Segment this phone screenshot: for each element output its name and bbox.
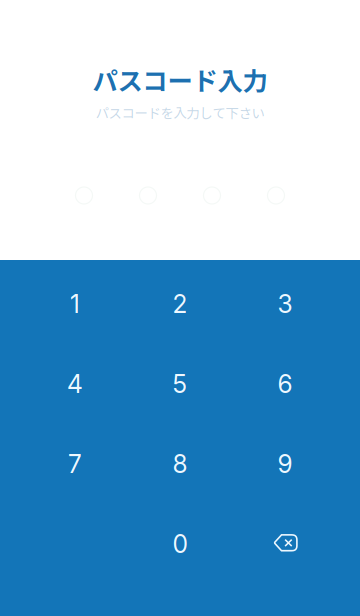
staticText: パスコードを入力して下さい	[95, 103, 264, 122]
staticText: 5	[172, 369, 187, 399]
staticText: 4	[67, 369, 83, 399]
staticText: 1	[70, 289, 80, 319]
staticText: 0	[172, 529, 187, 559]
button[interactable]: 8	[127, 424, 232, 504]
staticText: 6	[277, 369, 292, 399]
button[interactable]: Delete	[232, 504, 337, 584]
button[interactable]: 1	[22, 264, 127, 344]
staticText: 7	[68, 449, 82, 479]
staticText: 9	[277, 449, 292, 479]
button[interactable]: 5	[127, 344, 232, 424]
button[interactable]: 7	[22, 424, 127, 504]
staticText: 8	[172, 449, 187, 479]
button[interactable]: 2	[127, 264, 232, 344]
button[interactable]: 0	[127, 504, 232, 584]
staticText: 2	[172, 289, 187, 319]
button[interactable]: 4	[22, 344, 127, 424]
button[interactable]: 3	[232, 264, 337, 344]
button[interactable]: 9	[232, 424, 337, 504]
staticText: 3	[277, 289, 292, 319]
staticText: パスコード入力	[92, 61, 267, 98]
button[interactable]: 6	[232, 344, 337, 424]
